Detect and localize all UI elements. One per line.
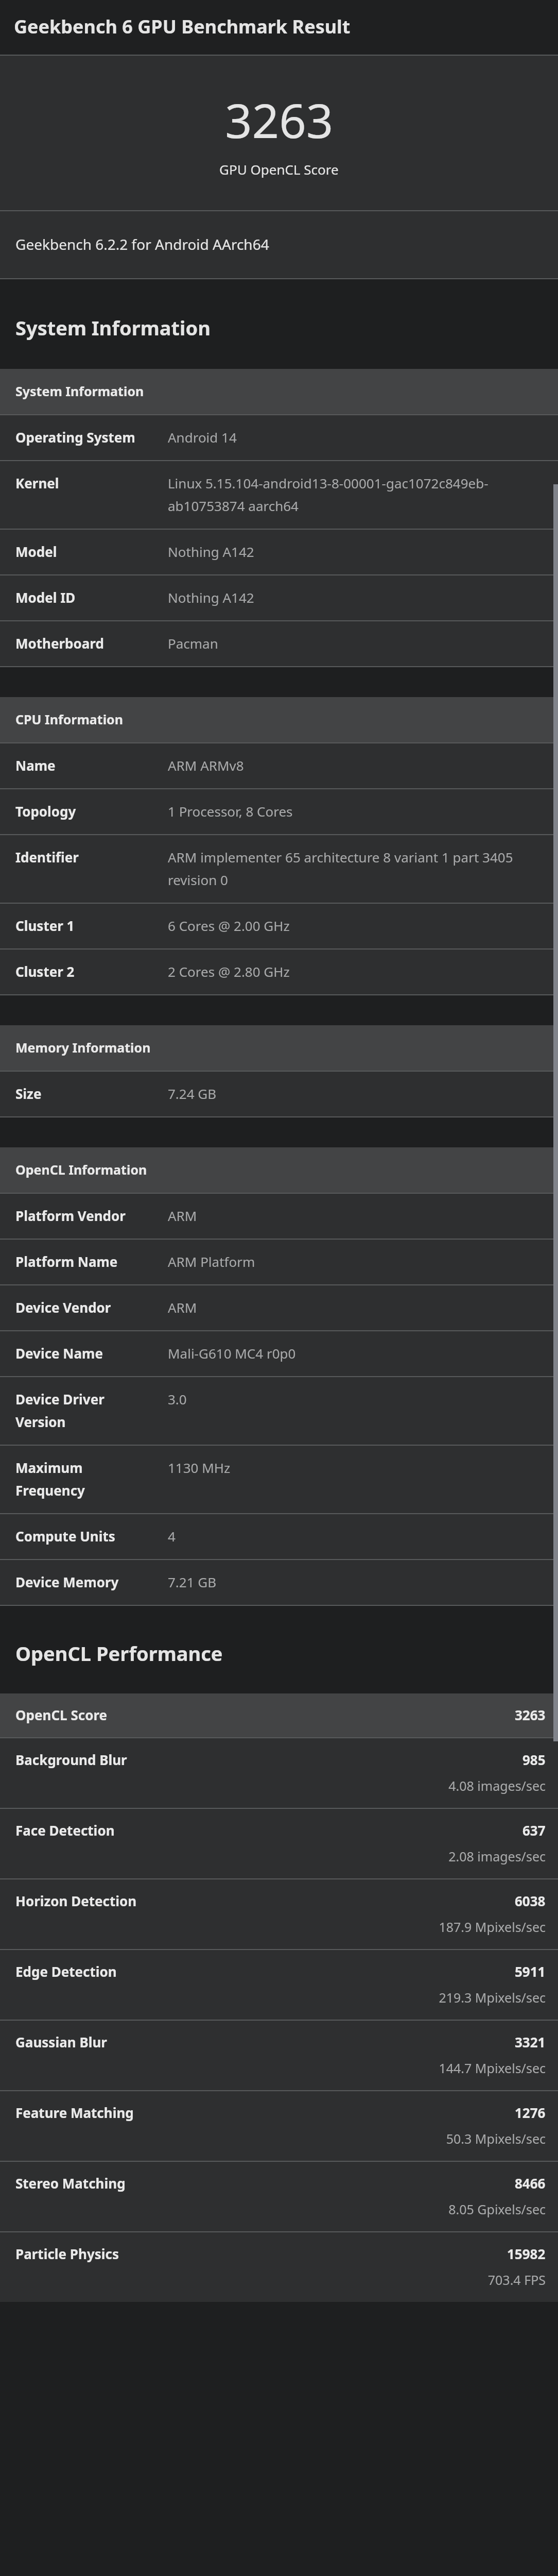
staticText: 7.21 GB bbox=[168, 1573, 547, 1591]
staticText: Model ID bbox=[15, 588, 155, 606]
button[interactable]: Device Driver Version bbox=[0, 1377, 558, 1445]
staticText: 5911 bbox=[515, 1962, 546, 1980]
button[interactable]: OpenCL Information bbox=[0, 1147, 558, 1193]
staticText: Nothing A142 bbox=[168, 543, 547, 561]
staticText: 1130 MHz bbox=[168, 1459, 547, 1477]
staticText: OpenCL Score bbox=[15, 1706, 515, 1724]
button[interactable]: Compute Units bbox=[0, 1514, 558, 1559]
staticText: 2 Cores @ 2.80 GHz bbox=[168, 962, 547, 980]
staticText: 3.0 bbox=[168, 1390, 547, 1408]
staticText: Device Memory bbox=[15, 1573, 155, 1591]
staticText: Name bbox=[15, 756, 155, 774]
staticText: Device Vendor bbox=[15, 1298, 155, 1316]
staticText: OpenCL Information bbox=[15, 1161, 147, 1178]
button[interactable]: Size bbox=[0, 1072, 558, 1116]
button[interactable]: Motherboard bbox=[0, 621, 558, 666]
staticText: ARM Platform bbox=[168, 1252, 547, 1270]
button[interactable]: Feature Matching bbox=[0, 2091, 558, 2161]
staticText: 187.9 Mpixels/sec bbox=[15, 1918, 546, 1936]
staticText: Geekbench 6.2.2 for Android AArch64 bbox=[15, 234, 269, 254]
staticText: Horizon Detection bbox=[15, 1892, 515, 1910]
staticText: Background Blur bbox=[15, 1751, 522, 1769]
staticText: 2.08 images/sec bbox=[15, 1848, 546, 1865]
staticText: Memory Information bbox=[15, 1039, 151, 1056]
button[interactable]: Topology bbox=[0, 789, 558, 834]
staticText: Feature Matching bbox=[15, 2104, 515, 2122]
staticText: Size bbox=[15, 1084, 155, 1103]
button[interactable]: System Information bbox=[0, 369, 558, 414]
button[interactable]: OpenCL Score bbox=[0, 1693, 558, 1737]
staticText: Stereo Matching bbox=[15, 2174, 515, 2192]
button[interactable]: Cluster 1 bbox=[0, 904, 558, 948]
staticText: System Information bbox=[15, 314, 211, 341]
staticText: 985 bbox=[522, 1751, 546, 1769]
staticText: Compute Units bbox=[15, 1527, 155, 1545]
button[interactable]: Device Memory bbox=[0, 1560, 558, 1605]
staticText: 6 Cores @ 2.00 GHz bbox=[168, 917, 547, 935]
button[interactable]: Particle Physics bbox=[0, 2232, 558, 2302]
staticText: 637 bbox=[522, 1821, 546, 1839]
button[interactable]: Kernel bbox=[0, 461, 558, 529]
staticText: ARM implementer 65 architecture 8 varian… bbox=[168, 848, 547, 889]
staticText: Motherboard bbox=[15, 634, 155, 652]
staticText: 8466 bbox=[515, 2174, 546, 2192]
button[interactable]: Stereo Matching bbox=[0, 2162, 558, 2231]
staticText: Gaussian Blur bbox=[15, 2033, 515, 2051]
staticText: Edge Detection bbox=[15, 1962, 515, 1980]
staticText: 6038 bbox=[515, 1892, 546, 1910]
staticText: 1 Processor, 8 Cores bbox=[168, 802, 547, 820]
staticText: Maximum Frequency bbox=[15, 1459, 155, 1499]
staticText: System Information bbox=[15, 382, 144, 400]
staticText: 4.08 images/sec bbox=[15, 1777, 546, 1794]
staticText: Device Name bbox=[15, 1344, 155, 1362]
button[interactable]: Device Name bbox=[0, 1331, 558, 1376]
staticText: 1276 bbox=[515, 2104, 546, 2122]
button[interactable]: Maximum Frequency bbox=[0, 1446, 558, 1513]
button[interactable]: Identifier bbox=[0, 835, 558, 903]
staticText: Platform Vendor bbox=[15, 1207, 155, 1225]
staticText: Cluster 2 bbox=[15, 962, 155, 980]
staticText: Cluster 1 bbox=[15, 917, 155, 935]
staticText: 3321 bbox=[515, 2033, 546, 2051]
button[interactable]: Platform Name bbox=[0, 1240, 558, 1284]
button[interactable]: Horizon Detection bbox=[0, 1879, 558, 1949]
staticText: 50.3 Mpixels/sec bbox=[15, 2130, 546, 2147]
button[interactable]: Model bbox=[0, 530, 558, 574]
button[interactable]: Platform Vendor bbox=[0, 1194, 558, 1239]
staticText: ARM ARMv8 bbox=[168, 756, 547, 774]
staticText: Linux 5.15.104-android13-8-00001-gac1072… bbox=[168, 474, 547, 515]
staticText: 4 bbox=[168, 1527, 547, 1545]
button[interactable]: Gaussian Blur bbox=[0, 2021, 558, 2090]
staticText: CPU Information bbox=[15, 710, 123, 728]
button[interactable]: Memory Information bbox=[0, 1025, 558, 1071]
staticText: Topology bbox=[15, 802, 155, 820]
staticText: Model bbox=[15, 543, 155, 561]
staticText: Face Detection bbox=[15, 1821, 522, 1839]
staticText: Identifier bbox=[15, 848, 155, 866]
button[interactable]: Cluster 2 bbox=[0, 950, 558, 994]
staticText: 15982 bbox=[507, 2245, 546, 2263]
staticText: 219.3 Mpixels/sec bbox=[15, 1989, 546, 2006]
staticText: ARM bbox=[168, 1207, 547, 1225]
staticText: 3263 bbox=[225, 88, 334, 152]
staticText: GPU OpenCL Score bbox=[219, 160, 339, 178]
button[interactable]: Background Blur bbox=[0, 1738, 558, 1808]
button[interactable]: Name bbox=[0, 743, 558, 788]
staticText: 8.05 Gpixels/sec bbox=[15, 2200, 546, 2218]
staticText: Pacman bbox=[168, 634, 547, 652]
staticText: Nothing A142 bbox=[168, 588, 547, 606]
staticText: Geekbench 6 GPU Benchmark Result bbox=[14, 14, 351, 39]
staticText: Kernel bbox=[15, 474, 155, 492]
button[interactable]: Model ID bbox=[0, 575, 558, 620]
staticText: Device Driver Version bbox=[15, 1390, 155, 1431]
button[interactable]: Operating System bbox=[0, 415, 558, 460]
staticText: 703.4 FPS bbox=[15, 2271, 546, 2289]
staticText: Mali-G610 MC4 r0p0 bbox=[168, 1344, 547, 1362]
button[interactable]: Face Detection bbox=[0, 1809, 558, 1878]
button[interactable]: Device Vendor bbox=[0, 1285, 558, 1330]
button[interactable]: CPU Information bbox=[0, 697, 558, 742]
button[interactable]: Edge Detection bbox=[0, 1950, 558, 2020]
staticText: Platform Name bbox=[15, 1252, 155, 1270]
staticText: 144.7 Mpixels/sec bbox=[15, 2059, 546, 2077]
staticText: Android 14 bbox=[168, 428, 547, 446]
